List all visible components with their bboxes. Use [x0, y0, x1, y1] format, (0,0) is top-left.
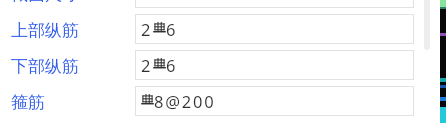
- button[interactable]: 上部纵筋: [11, 20, 79, 41]
- button[interactable]: 2: [135, 14, 414, 44]
- button[interactable]: 箍筋: [11, 92, 45, 113]
- button[interactable]: 截面尺寸: [11, 0, 79, 5]
- button[interactable]: 8@200: [135, 86, 414, 116]
- staticText: 8@200: [154, 90, 216, 112]
- staticText: 2: [141, 54, 153, 76]
- button[interactable]: 2: [135, 50, 414, 80]
- staticText: 6: [166, 18, 178, 40]
- button[interactable]: [135, 0, 414, 8]
- staticText: 2: [141, 18, 153, 40]
- button[interactable]: 下部纵筋: [11, 56, 79, 77]
- staticText: 6: [166, 54, 178, 76]
